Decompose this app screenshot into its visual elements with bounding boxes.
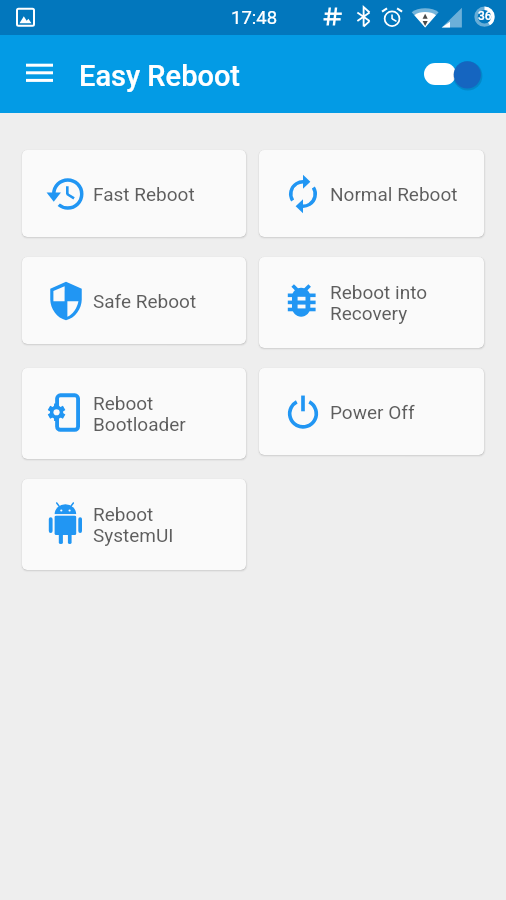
button[interactable]: Power Off bbox=[259, 368, 484, 455]
button[interactable]: Open navigation menu bbox=[18, 54, 61, 92]
button[interactable]: Reboot Bootloader bbox=[22, 368, 246, 459]
staticText: Power Off bbox=[330, 401, 415, 423]
staticText: 17:48 bbox=[231, 7, 278, 29]
staticText: Safe Reboot bbox=[93, 290, 197, 312]
staticText: Normal Reboot bbox=[330, 183, 458, 205]
button[interactable]: Safe Reboot bbox=[22, 257, 246, 344]
staticText: Fast Reboot bbox=[93, 183, 195, 205]
button[interactable]: Reboot SystemUI bbox=[22, 479, 246, 570]
staticText: Reboot into Recovery bbox=[330, 281, 428, 324]
button[interactable]: Reboot into Recovery bbox=[259, 257, 484, 348]
staticText: 36 bbox=[478, 9, 492, 23]
staticText: Reboot Bootloader bbox=[93, 392, 186, 435]
button[interactable]: Normal Reboot bbox=[259, 150, 484, 237]
staticText: Reboot SystemUI bbox=[93, 503, 174, 546]
button[interactable]: Fast Reboot bbox=[22, 150, 246, 237]
staticText: Easy Reboot bbox=[79, 59, 241, 93]
button[interactable]: Toggle root access bbox=[418, 51, 490, 97]
